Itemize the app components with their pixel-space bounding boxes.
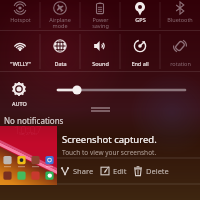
button[interactable]: End all (120, 31, 160, 71)
staticText: Hotspot (10, 16, 31, 23)
button[interactable]: Delete (133, 166, 169, 176)
button[interactable]: Data (40, 31, 80, 71)
staticText: 10:07 (14, 122, 42, 137)
staticText: "WILLY" (10, 60, 31, 67)
button[interactable]: rotation (160, 31, 200, 71)
staticText: No notifications (4, 115, 64, 126)
staticText: Airplane mode (49, 16, 71, 29)
button[interactable]: Brightness slider (52, 82, 192, 98)
staticText: Screenshot captured. (62, 133, 157, 146)
staticText: Touch to view your screenshot. (62, 148, 157, 157)
button[interactable]: Edit (100, 166, 127, 176)
button[interactable]: GPS (120, 0, 160, 30)
staticText: GPS (135, 16, 146, 23)
staticText: AUTO (12, 100, 27, 107)
staticText: Data (54, 60, 67, 67)
button[interactable]: Power saving (80, 0, 120, 30)
button[interactable]: Share (60, 166, 94, 176)
staticText: Bluetooth (167, 16, 193, 23)
staticText: Share (73, 166, 94, 176)
button[interactable]: Auto brightness (5, 78, 33, 108)
button[interactable]: Sound (80, 31, 120, 71)
staticText: Edit (113, 166, 127, 176)
staticText: Power saving (92, 16, 109, 29)
staticText: rotation (170, 60, 191, 67)
staticText: End all (131, 60, 149, 67)
button[interactable]: Bluetooth (160, 0, 200, 30)
staticText: Delete (146, 166, 169, 176)
staticText: Sound (92, 60, 109, 67)
button[interactable]: Hotspot (0, 0, 40, 30)
staticText: Sat, 27 Dec (19, 131, 38, 136)
button[interactable]: 10:07 (0, 126, 200, 185)
button[interactable]: Airplane mode (40, 0, 80, 30)
button[interactable]: "WILLY" (0, 31, 40, 71)
